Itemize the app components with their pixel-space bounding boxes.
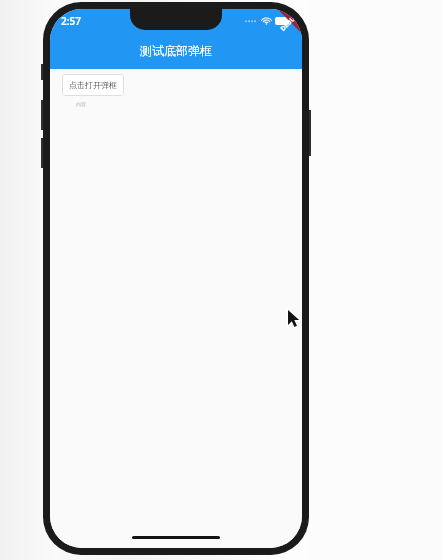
staticText: 点击打开弹框 [69,80,117,90]
staticText: DEBUG [278,10,301,33]
button[interactable]: 点击打开弹框 [62,74,124,96]
staticText: 内容 [76,101,86,107]
other: Home indicator [132,536,220,539]
staticText: 测试底部弹框 [140,43,212,58]
staticText: 2:57 [61,14,81,28]
